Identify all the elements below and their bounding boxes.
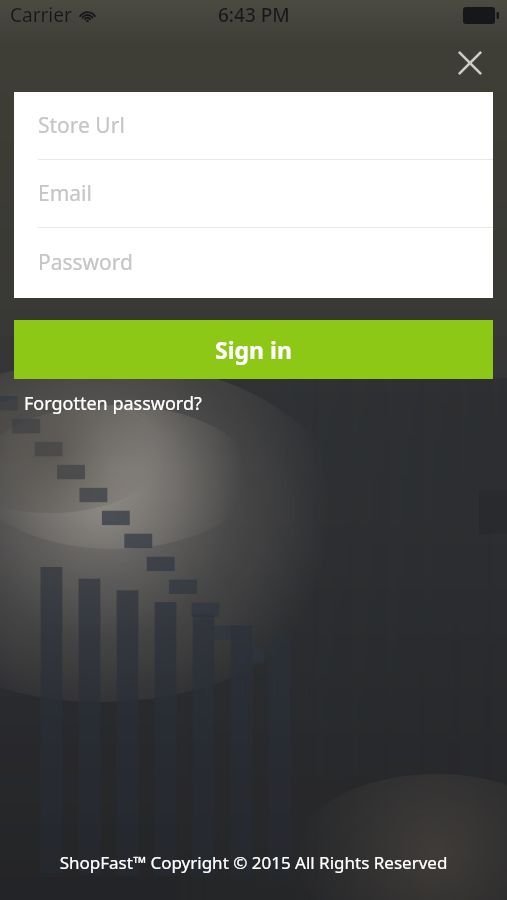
staticText: Email	[38, 179, 92, 208]
staticText: 6:43 PM	[218, 2, 290, 28]
button[interactable]: Sign in	[14, 320, 493, 379]
staticText: Carrier	[10, 2, 72, 28]
button[interactable]: Forgotten password?	[24, 391, 202, 416]
button[interactable]: Close	[449, 42, 491, 84]
staticText: Sign in	[215, 334, 292, 365]
button[interactable]: Store Url	[14, 92, 493, 159]
staticText: Store Url	[38, 111, 125, 140]
button[interactable]: Email	[14, 160, 493, 227]
staticText: Password	[38, 248, 133, 277]
button[interactable]: Password	[14, 228, 493, 296]
staticText: ShopFast™ Copyright © 2015 All Rights Re…	[0, 851, 507, 874]
staticText: Forgotten password?	[24, 391, 202, 416]
